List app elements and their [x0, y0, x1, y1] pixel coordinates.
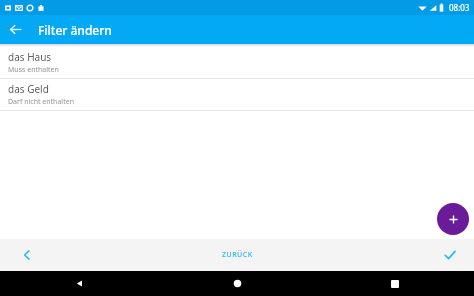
button[interactable]: das Geld — [0, 79, 474, 111]
staticText: Muss enthalten — [8, 65, 59, 75]
button[interactable]: Add filter — [437, 203, 469, 235]
staticText: 08:03 — [449, 2, 470, 13]
staticText: das Geld — [8, 82, 49, 96]
staticText: das Haus — [8, 50, 52, 64]
button[interactable]: Previous — [13, 241, 41, 269]
staticText: Darf nicht enthalten — [8, 97, 74, 107]
staticText: ZURÜCK — [222, 250, 253, 260]
staticText: Filter ändern — [38, 22, 112, 38]
button[interactable]: Back — [0, 15, 30, 44]
button[interactable]: ZURÜCK — [222, 250, 253, 260]
button[interactable]: das Haus — [0, 47, 474, 79]
button[interactable]: Recent apps — [316, 271, 474, 296]
button[interactable]: Home — [197, 271, 277, 296]
button[interactable]: Confirm — [436, 241, 464, 269]
button[interactable]: Back — [0, 271, 158, 296]
